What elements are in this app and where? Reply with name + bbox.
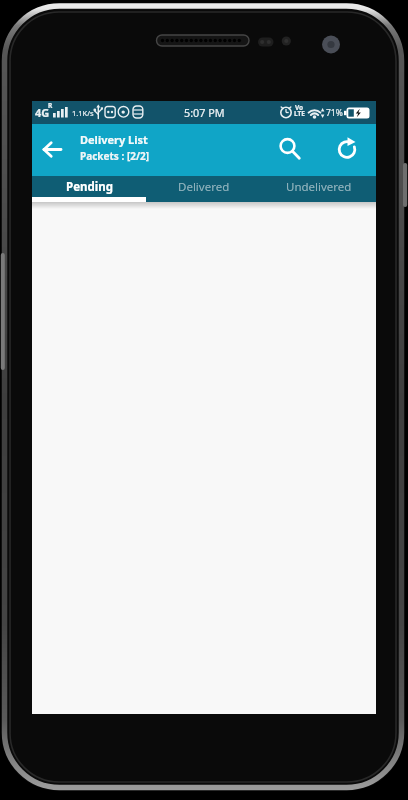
button[interactable]	[36, 132, 68, 168]
button[interactable]: Undelivered	[261, 176, 376, 202]
staticText: Delivered	[178, 179, 230, 195]
staticText: 4G	[35, 105, 50, 120]
button[interactable]	[272, 130, 305, 167]
staticText: Delivery List	[80, 132, 148, 147]
staticText: 1.1K/s	[72, 108, 94, 118]
staticText: 71%	[326, 107, 343, 119]
staticText: Pending	[66, 179, 113, 195]
button[interactable]: Pending	[32, 176, 146, 202]
button[interactable]: Delivered	[146, 176, 261, 202]
staticText: Packets : [2/2]	[80, 149, 150, 163]
staticText: LTE	[294, 109, 305, 118]
staticText: Vo	[295, 103, 304, 112]
staticText: R	[48, 101, 53, 110]
staticText: 5:07 PM	[184, 105, 225, 120]
button[interactable]	[330, 130, 364, 168]
staticText: Undelivered	[286, 179, 352, 195]
